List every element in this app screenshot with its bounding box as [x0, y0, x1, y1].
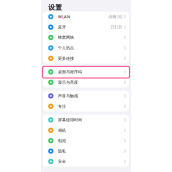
staticText: 桌面与程序坞 — [58, 69, 82, 74]
button[interactable]: 屏幕使用时间 — [43, 115, 129, 125]
staticText: 声音与触感 — [58, 93, 78, 98]
button[interactable]: 电池 — [43, 135, 129, 146]
staticText: 安全 — [58, 159, 66, 164]
button[interactable]: 显示与亮度 — [43, 77, 129, 87]
button[interactable]: 更多连接 — [43, 53, 129, 63]
staticText: 内网-5G — [108, 14, 122, 19]
button[interactable]: 隐私 — [43, 146, 129, 156]
staticText: 蜂窝网络 — [58, 35, 74, 40]
staticText: 设置 — [48, 3, 62, 11]
button[interactable]: 相机 — [43, 125, 129, 135]
button[interactable]: 蓝牙 — [43, 22, 129, 32]
staticText: 已打开 — [110, 25, 122, 29]
staticText: 屏幕使用时间 — [58, 117, 82, 122]
staticText: 蓝牙 — [58, 25, 66, 29]
staticText: 更多连接 — [58, 56, 74, 61]
button[interactable]: 蜂窝网络 — [43, 32, 129, 43]
staticText: 个人热点 — [58, 45, 74, 50]
staticText: 专注 — [58, 104, 66, 109]
staticText: 相机 — [58, 128, 66, 133]
button[interactable]: WLAN — [43, 11, 129, 22]
button[interactable]: 桌面与程序坞 — [43, 67, 129, 77]
staticText: 隐私 — [58, 149, 66, 153]
staticText: WLAN — [58, 14, 70, 19]
staticText: 电池 — [58, 138, 66, 143]
staticText: 显示与亮度 — [58, 80, 78, 85]
button[interactable]: 声音与触感 — [43, 91, 129, 101]
button[interactable]: 专注 — [43, 101, 129, 111]
button[interactable]: 个人热点 — [43, 43, 129, 53]
button[interactable]: 安全 — [43, 156, 129, 167]
